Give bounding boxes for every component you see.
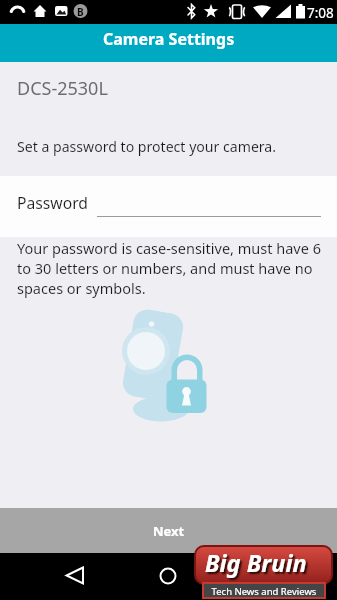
staticText: Your password is case-sensitive, must ha… <box>17 238 321 298</box>
staticText: Next <box>153 522 185 540</box>
staticText: Big Bruin <box>205 547 307 579</box>
staticText: B <box>77 5 84 19</box>
staticText: Tech News and Reviews <box>204 585 324 598</box>
button[interactable] <box>51 553 98 600</box>
staticText: Password <box>17 192 88 213</box>
staticText: Set a password to protect your camera. <box>17 137 277 156</box>
button[interactable] <box>0 176 337 237</box>
staticText: Camera Settings <box>103 28 235 50</box>
staticText: 7:08 <box>307 4 334 22</box>
button[interactable]: Camera Settings <box>0 24 337 62</box>
button[interactable] <box>145 553 192 600</box>
staticText: DCS-2530L <box>17 76 108 101</box>
button[interactable]: Next <box>0 508 337 553</box>
